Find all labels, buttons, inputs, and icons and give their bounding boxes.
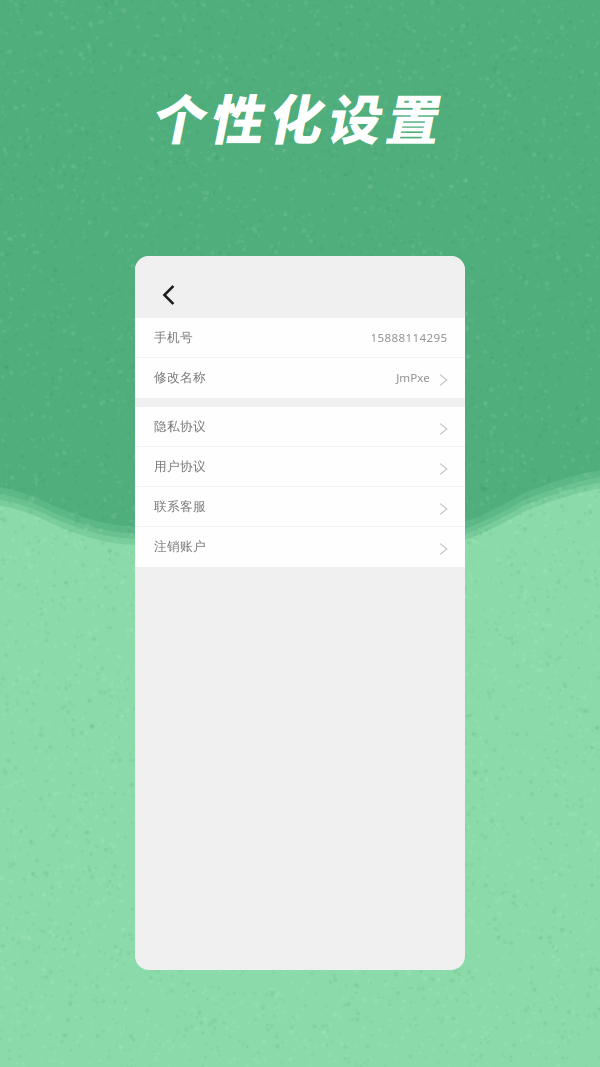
staticText: 注销账户	[154, 538, 206, 554]
staticText: 修改名称	[154, 369, 206, 385]
staticText: 用户协议	[154, 458, 206, 474]
button[interactable]: 隐私协议	[135, 407, 465, 447]
staticText: 个性化设置	[150, 78, 437, 155]
button[interactable]: 手机号	[135, 318, 465, 358]
staticText: 15888114295	[370, 330, 447, 345]
staticText: JmPxe	[396, 370, 430, 385]
staticText: 手机号	[154, 329, 193, 345]
staticText: 隐私协议	[154, 418, 206, 434]
button[interactable]: 修改名称	[135, 358, 465, 398]
button[interactable]: 联系客服	[135, 487, 465, 527]
button[interactable]: 用户协议	[135, 447, 465, 487]
button[interactable]: Back	[135, 256, 198, 318]
button[interactable]: 注销账户	[135, 527, 465, 567]
staticText: 联系客服	[154, 498, 206, 514]
